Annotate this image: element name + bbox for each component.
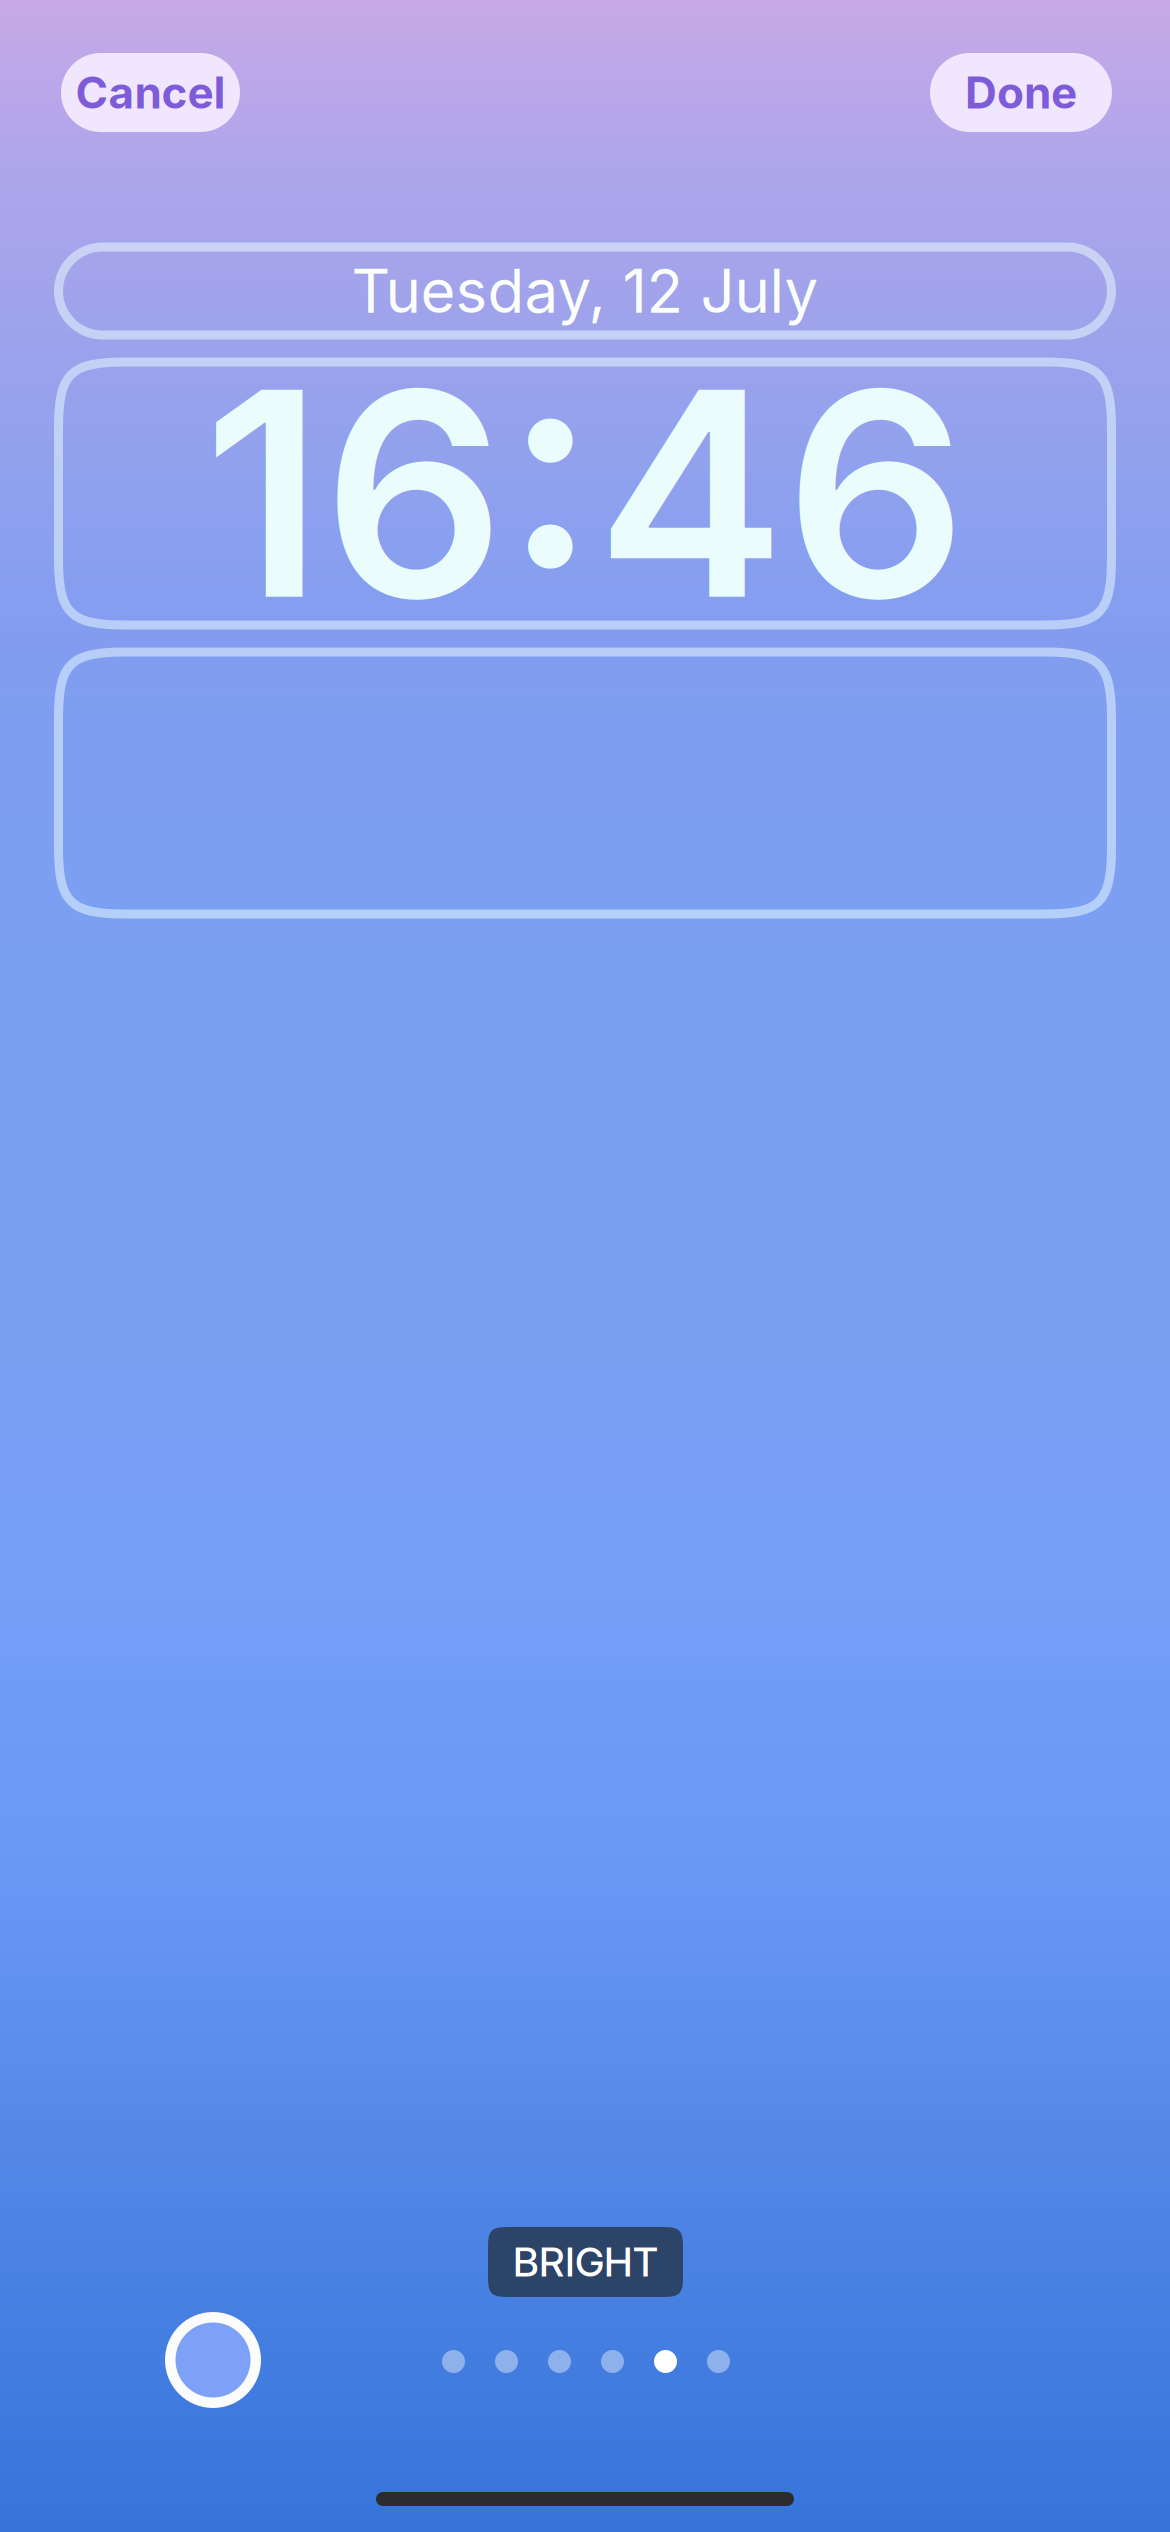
staticText: Tuesday, 12 July [351,255,818,327]
button[interactable]: Done [930,53,1112,132]
button[interactable] [58,652,1111,914]
staticText: Done [965,66,1077,119]
button[interactable]: Cancel [61,53,240,132]
button[interactable]: 16:46 [58,362,1111,625]
staticText: 16:46 [203,322,967,665]
button[interactable]: Wallpaper colour [165,2312,261,2408]
button[interactable]: Tuesday, 12 July [58,247,1111,335]
staticText: BRIGHT [513,2238,658,2286]
staticText: Cancel [75,66,225,119]
